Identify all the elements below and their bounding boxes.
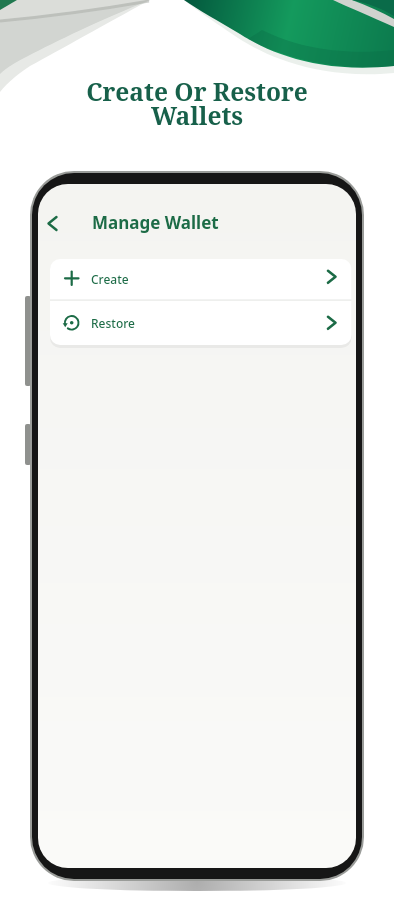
staticText: Wallets xyxy=(0,99,394,132)
button[interactable] xyxy=(40,208,70,238)
button[interactable]: Restore xyxy=(50,301,351,345)
staticText: Restore xyxy=(91,315,135,331)
staticText: Manage Wallet xyxy=(92,211,219,234)
staticText: Create Or Restore xyxy=(0,75,394,108)
staticText: Create xyxy=(91,271,129,287)
button[interactable]: Create xyxy=(50,259,351,300)
